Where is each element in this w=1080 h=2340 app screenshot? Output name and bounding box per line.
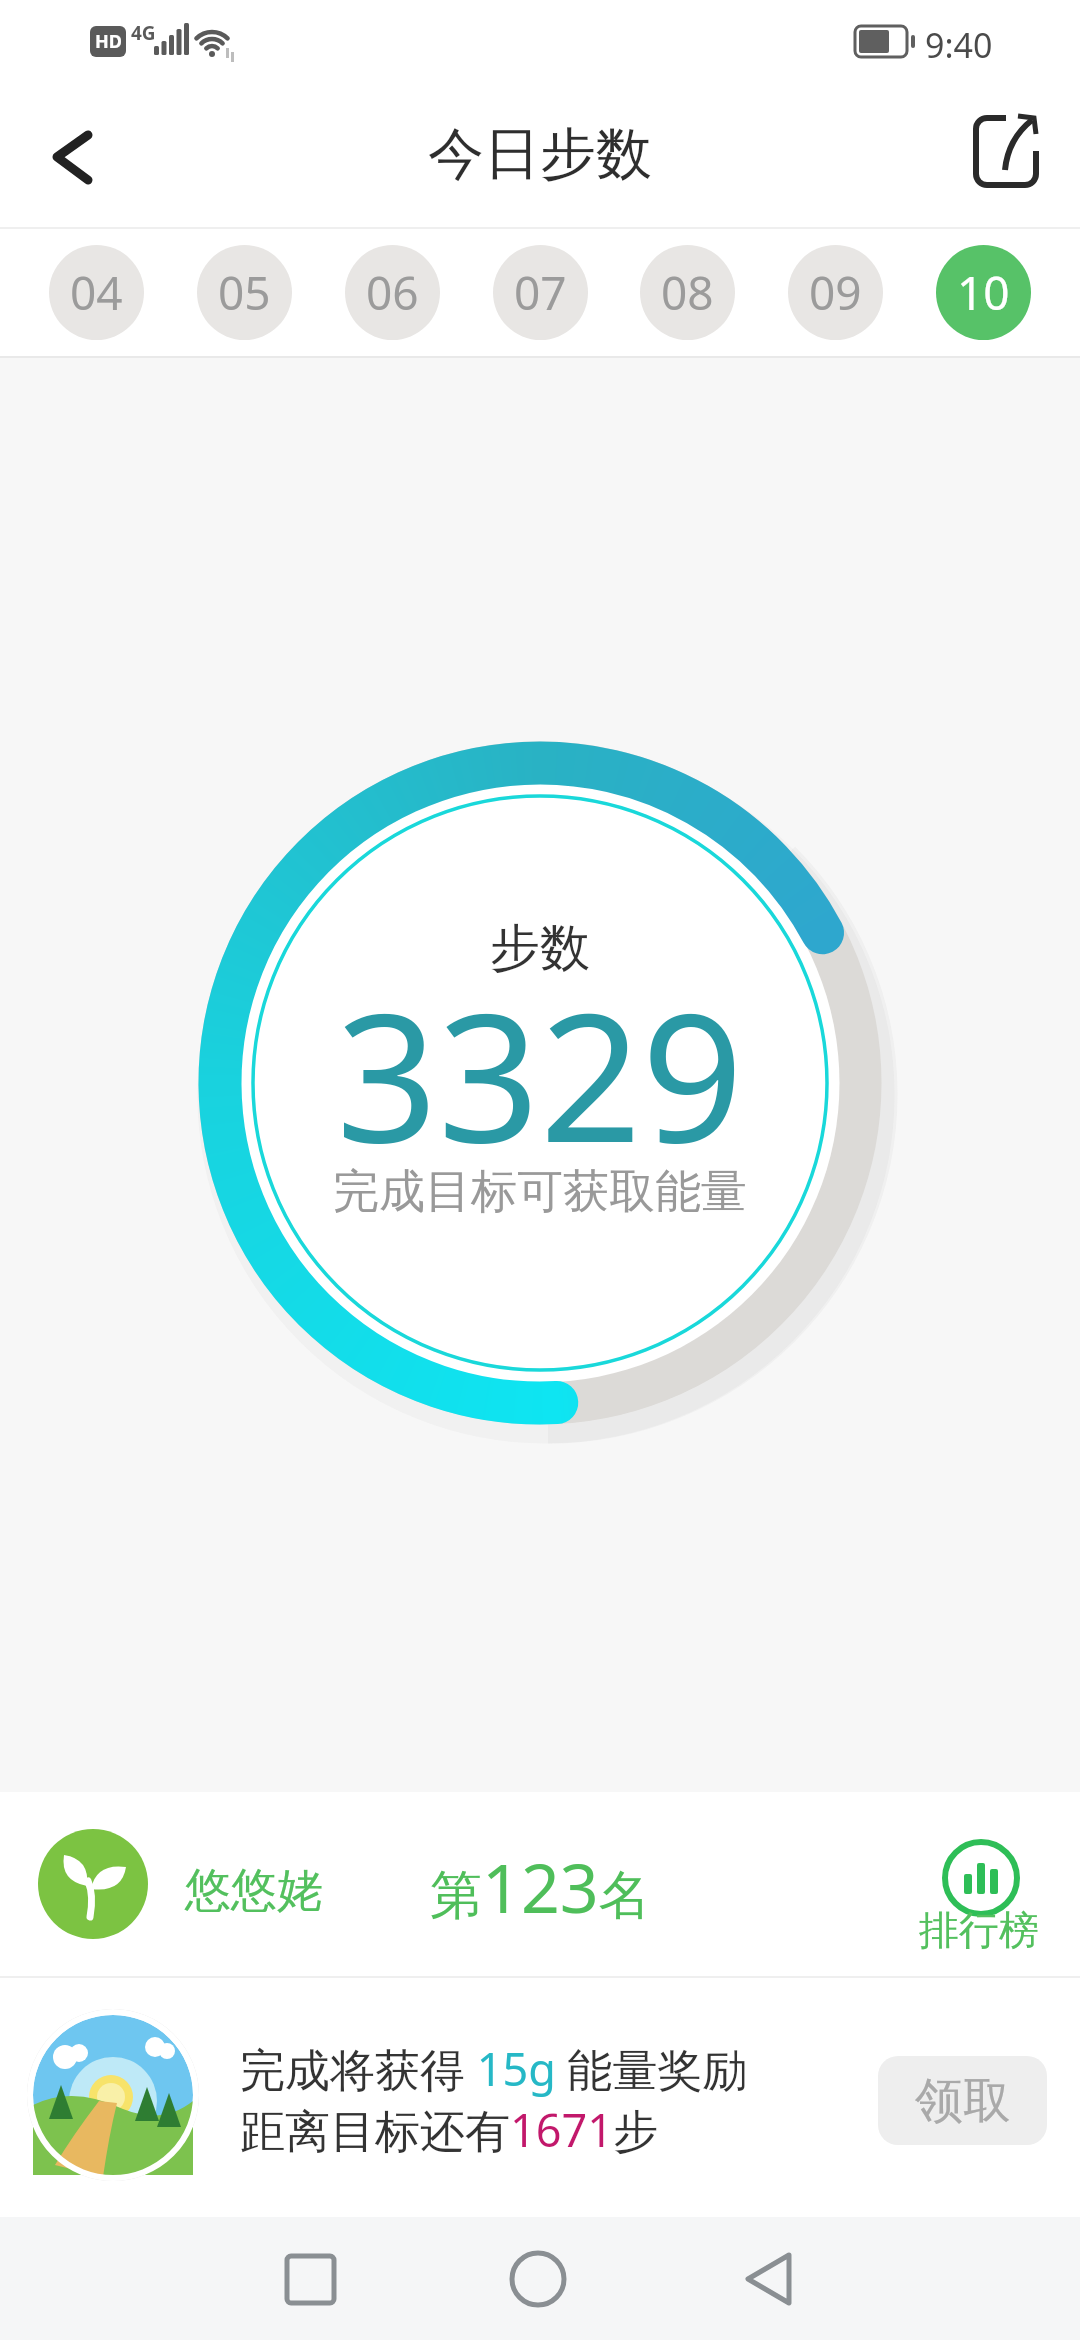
staticText: 完成目标可获取能量 bbox=[333, 1163, 747, 1221]
staticText: 悠悠姥 bbox=[185, 1862, 323, 1920]
staticText: 3329 bbox=[336, 952, 744, 1194]
staticText: 步数 bbox=[490, 917, 590, 980]
button[interactable]: 领取 bbox=[878, 2056, 1047, 2145]
staticText: 9:40 bbox=[925, 22, 993, 68]
staticText: 10 bbox=[957, 261, 1010, 324]
button[interactable]: 悠悠姥 bbox=[0, 1792, 1080, 1976]
button[interactable]: 04 bbox=[49, 245, 144, 340]
staticText: 距离目标还有1671步 bbox=[240, 2099, 658, 2160]
button[interactable]: 08 bbox=[640, 245, 735, 340]
button[interactable] bbox=[250, 2222, 370, 2335]
button[interactable]: 09 bbox=[788, 245, 883, 340]
staticText: 排行榜 bbox=[919, 1905, 1039, 1955]
button[interactable] bbox=[478, 2222, 598, 2335]
staticText: 第123名 bbox=[430, 1840, 651, 1933]
staticText: HD bbox=[95, 29, 122, 54]
button[interactable] bbox=[708, 2222, 828, 2335]
staticText: 05 bbox=[218, 261, 271, 324]
button[interactable]: 10 bbox=[936, 245, 1031, 340]
staticText: 今日步数 bbox=[428, 119, 652, 190]
staticText: 08 bbox=[661, 261, 714, 324]
button[interactable]: 06 bbox=[345, 245, 440, 340]
button[interactable] bbox=[958, 103, 1058, 203]
staticText: 07 bbox=[514, 261, 567, 324]
staticText: 领取 bbox=[915, 2071, 1011, 2131]
button[interactable] bbox=[25, 110, 125, 205]
button[interactable]: 07 bbox=[493, 245, 588, 340]
staticText: 09 bbox=[809, 261, 862, 324]
button[interactable]: 排行榜 bbox=[900, 1830, 1070, 1970]
button[interactable]: 05 bbox=[197, 245, 292, 340]
staticText: 完成将获得 15g 能量奖励 bbox=[240, 2038, 748, 2099]
staticText: 06 bbox=[366, 261, 419, 324]
staticText: 04 bbox=[70, 261, 123, 324]
staticText: 4G bbox=[131, 20, 156, 46]
